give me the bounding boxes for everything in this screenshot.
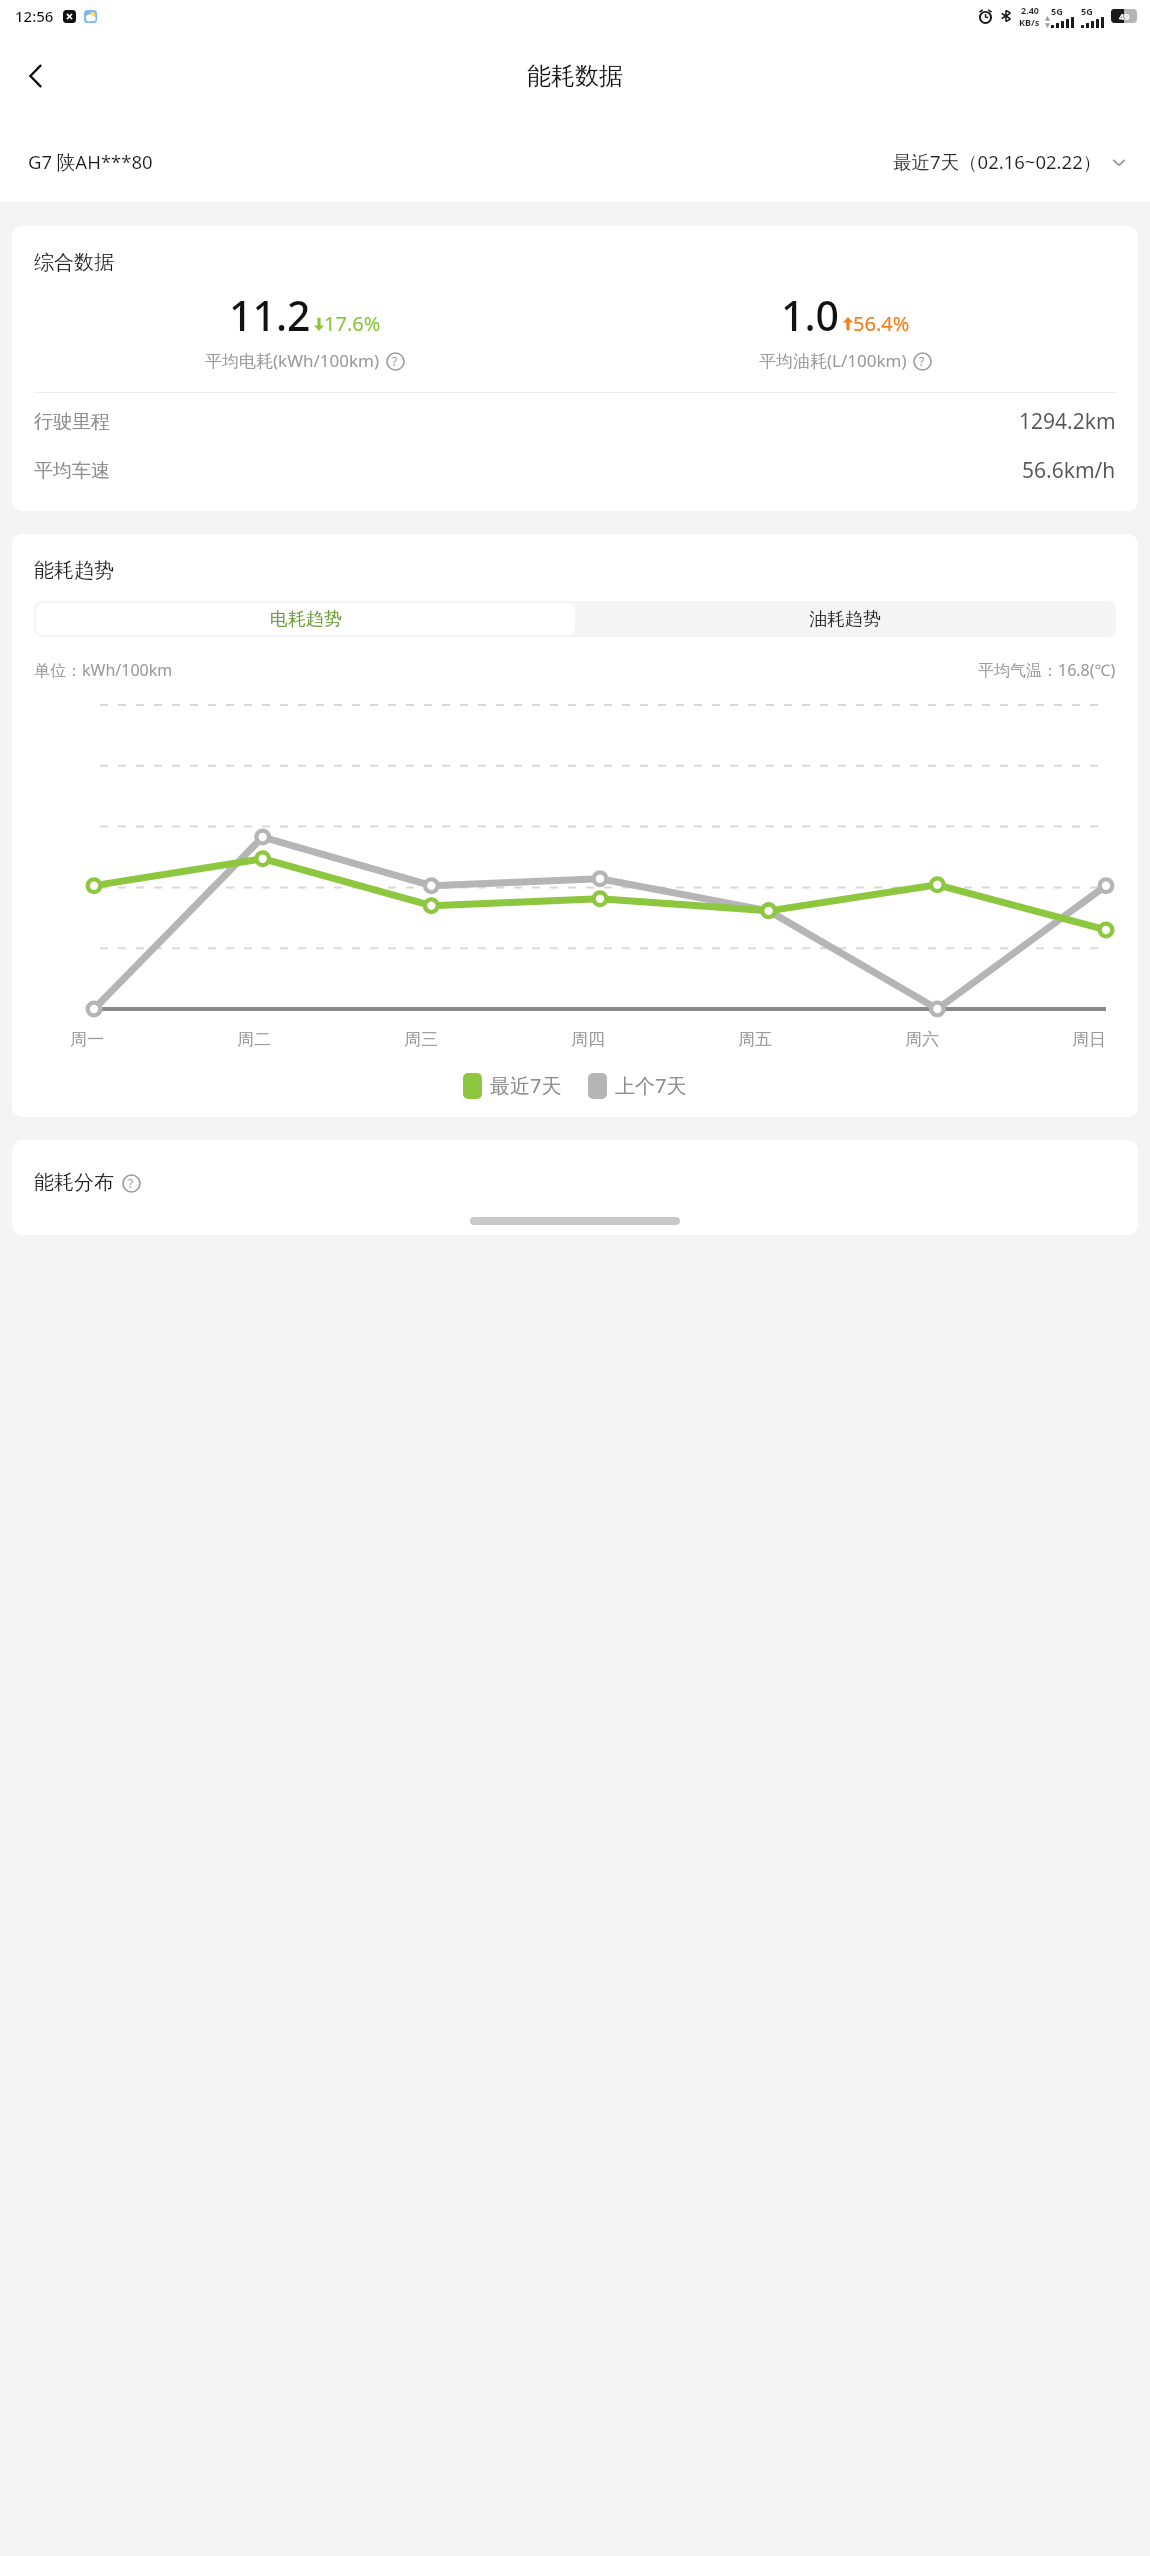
staticText: 周六 — [895, 1029, 949, 1050]
staticText: 12:56 — [15, 6, 54, 26]
staticText: 能耗数据 — [527, 61, 623, 91]
staticText: 周日 — [1062, 1029, 1116, 1050]
staticText: 周三 — [394, 1029, 448, 1050]
button[interactable]: Back — [8, 48, 64, 104]
staticText: ? — [392, 353, 398, 369]
staticText: 周五 — [728, 1029, 782, 1050]
staticText: ? — [128, 1175, 134, 1191]
button[interactable]: 最近7天（02.16~02.22） — [893, 149, 1128, 174]
staticText: 能耗趋势 — [34, 558, 114, 583]
staticText: 5G — [1051, 5, 1063, 17]
staticText: 56.6km/h — [1022, 456, 1116, 485]
staticText: 17.6% — [324, 310, 381, 337]
staticText: 56.4% — [853, 310, 910, 337]
button[interactable]: 电耗趋势 — [36, 603, 575, 635]
staticText: 能耗分布 — [34, 1170, 114, 1195]
staticText: 最近7天 — [490, 1072, 562, 1099]
staticText: 平均车速 — [34, 459, 110, 483]
staticText: 周一 — [60, 1029, 114, 1050]
staticText: 1294.2km — [1019, 407, 1116, 436]
staticText: 平均气温：16.8(℃) — [978, 659, 1116, 681]
staticText: KB/s — [1019, 16, 1040, 28]
staticText: 平均油耗(L/100km) — [759, 349, 907, 372]
staticText: 综合数据 — [34, 250, 114, 275]
button[interactable]: 油耗趋势 — [575, 603, 1114, 635]
staticText: G7 陕AH***80 — [28, 149, 153, 174]
button[interactable]: 说明 — [385, 351, 405, 371]
staticText: 49 — [1119, 10, 1130, 22]
staticText: 电耗趋势 — [270, 608, 342, 631]
staticText: 行驶里程 — [34, 410, 110, 434]
staticText: 11.2 — [229, 287, 311, 343]
button[interactable]: 说明 — [121, 1173, 141, 1193]
staticText: 最近7天（02.16~02.22） — [893, 149, 1102, 174]
staticText: 1.0 — [781, 287, 840, 343]
staticText: 平均电耗(kWh/100km) — [205, 349, 380, 372]
staticText: 上个7天 — [615, 1072, 687, 1099]
staticText: 周二 — [227, 1029, 281, 1050]
staticText: ? — [919, 353, 925, 369]
staticText: 油耗趋势 — [809, 608, 881, 631]
staticText: 单位：kWh/100km — [34, 659, 173, 681]
staticText: 2.40 — [1021, 4, 1039, 16]
button[interactable]: 说明 — [912, 351, 932, 371]
staticText: 5G — [1081, 5, 1093, 17]
button[interactable]: 综合数据 — [12, 226, 1138, 511]
staticText: 周四 — [561, 1029, 615, 1050]
